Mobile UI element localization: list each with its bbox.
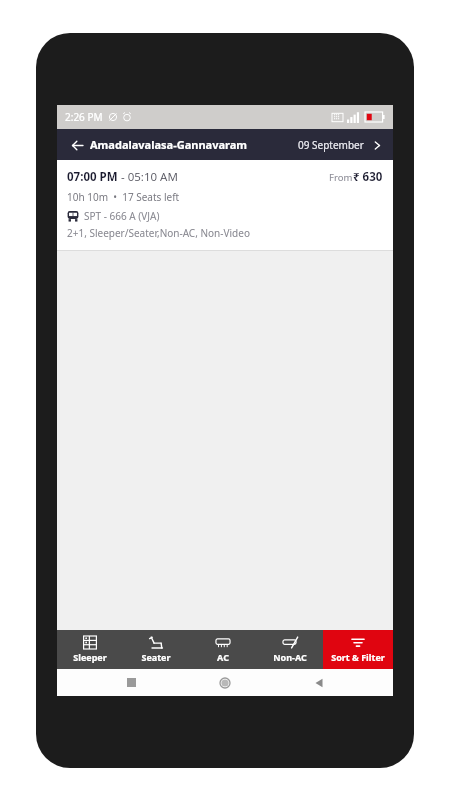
button[interactable]: Recent apps bbox=[116, 669, 146, 696]
button[interactable]: Home bbox=[210, 669, 240, 696]
staticText: Sort & Filter bbox=[331, 651, 385, 663]
staticText: Seater bbox=[141, 651, 171, 663]
staticText: 2:26 PM bbox=[65, 110, 103, 124]
button[interactable]: Non-AC bbox=[256, 630, 323, 669]
button[interactable]: Sleeper bbox=[57, 630, 123, 669]
button[interactable]: Back bbox=[67, 135, 87, 155]
button[interactable]: 07:00 PM bbox=[57, 160, 393, 250]
staticText: 2+1, Sleeper/Seater,Non-AC, Non-Video bbox=[67, 226, 250, 240]
staticText: From bbox=[329, 171, 353, 184]
staticText: - 05:10 AM bbox=[118, 169, 178, 185]
staticText: 10h 10m • 17 Seats left bbox=[67, 190, 180, 204]
button[interactable]: Back bbox=[304, 669, 334, 696]
staticText: AC bbox=[217, 651, 229, 663]
staticText: Non-AC bbox=[273, 651, 307, 663]
staticText: Amadalavalasa-Gannavaram bbox=[90, 137, 248, 152]
button[interactable]: 09 September bbox=[298, 138, 383, 152]
staticText: Sleeper bbox=[73, 651, 107, 663]
button[interactable]: Seater bbox=[123, 630, 189, 669]
button[interactable]: Sort & Filter bbox=[323, 630, 393, 669]
staticText: 07:00 PM bbox=[67, 169, 118, 185]
staticText: ₹ 630 bbox=[353, 169, 383, 185]
button[interactable]: AC bbox=[189, 630, 256, 669]
staticText: 09 September bbox=[298, 138, 364, 152]
staticText: SPT - 666 A (VJA) bbox=[84, 209, 160, 223]
